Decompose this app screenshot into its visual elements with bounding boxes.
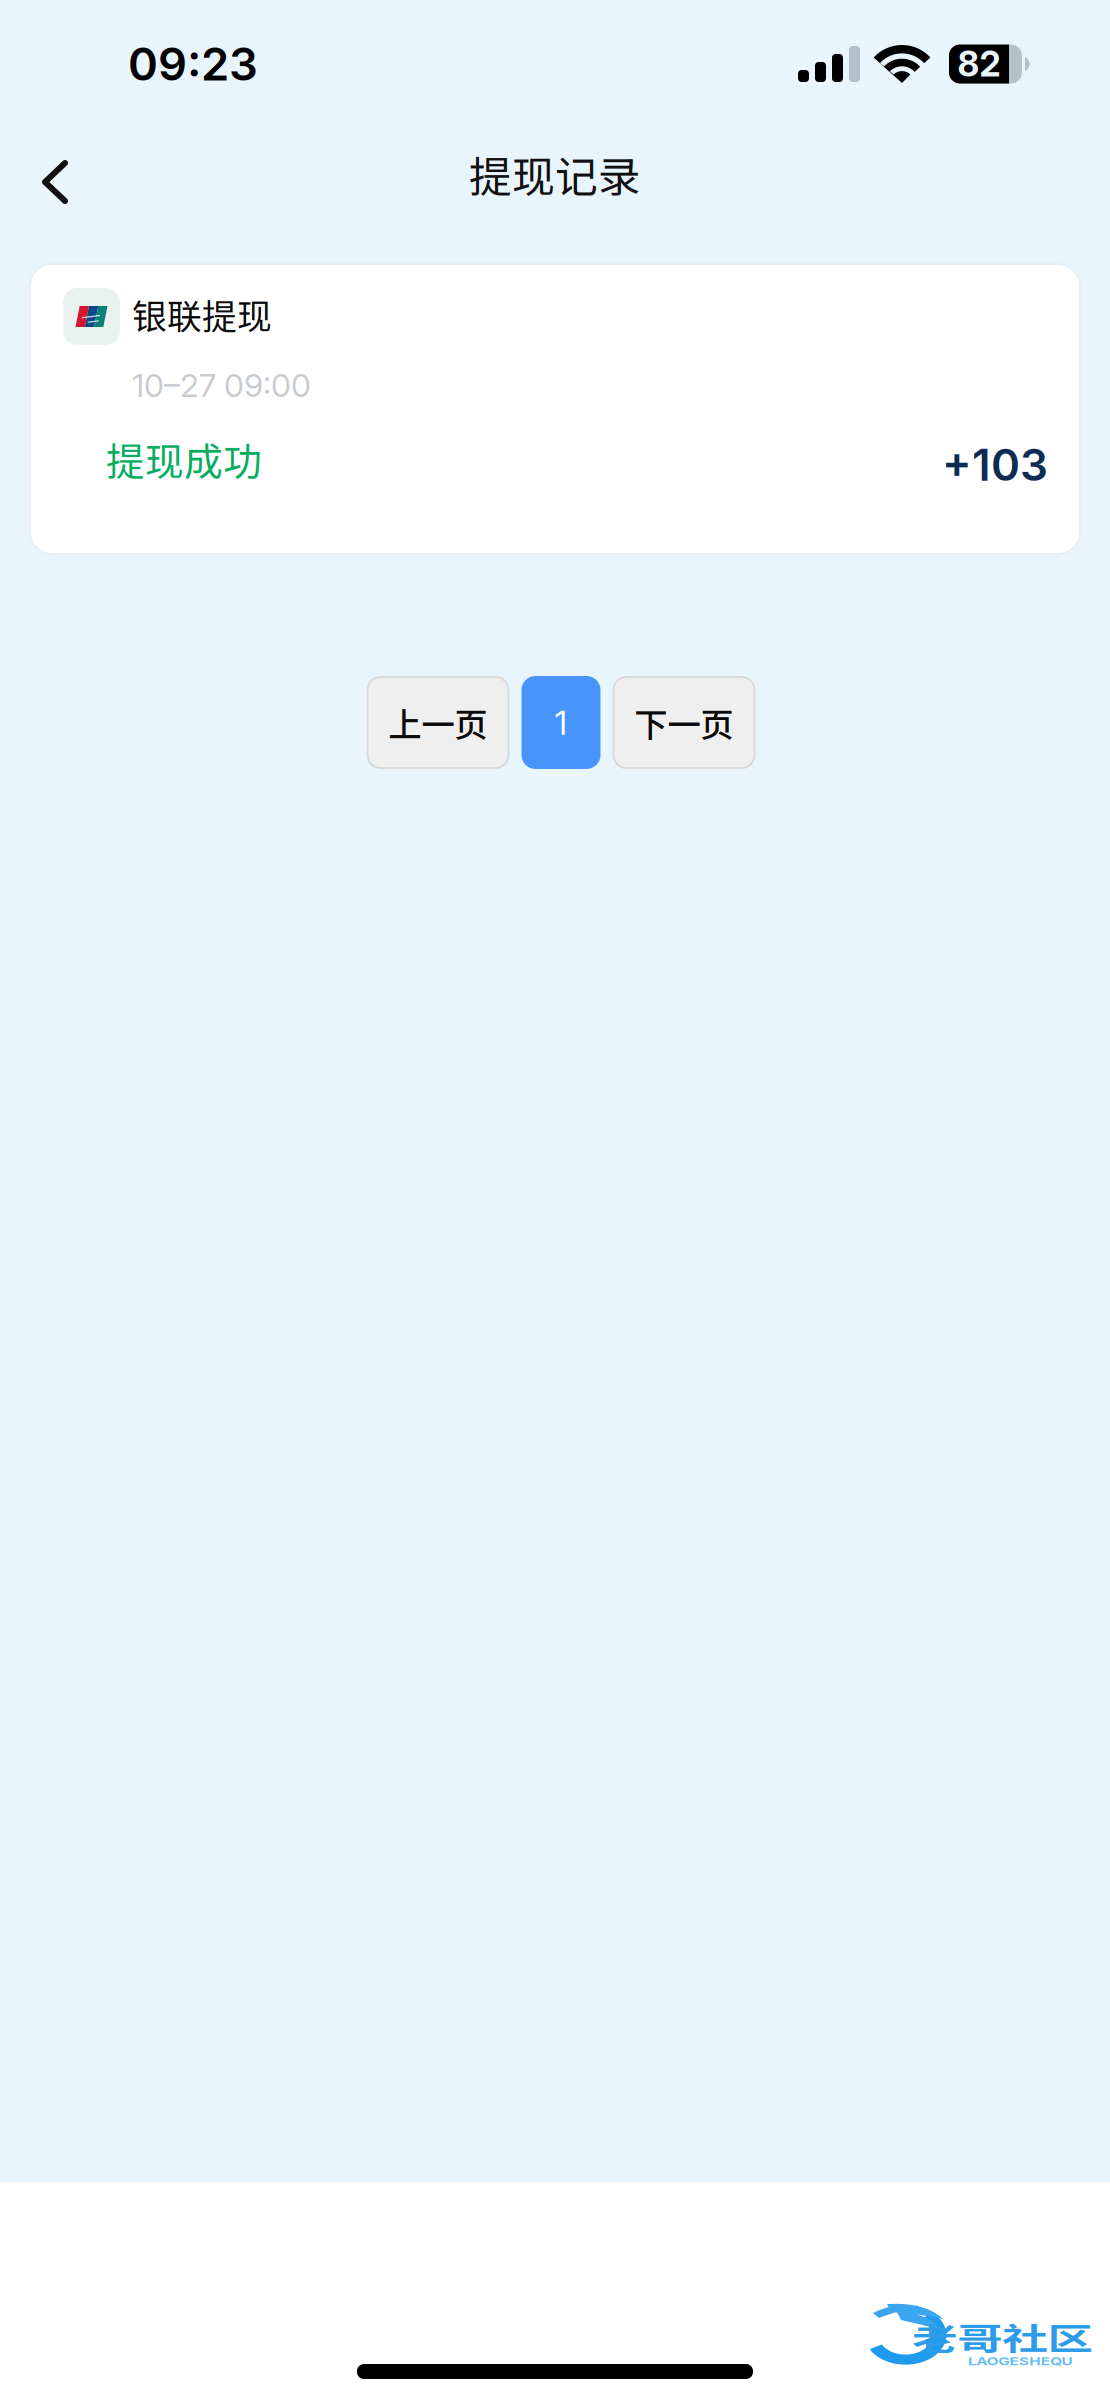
- button[interactable]: 1: [522, 677, 599, 768]
- staticText: 老哥社区: [912, 2314, 1060, 2368]
- staticText: 提现记录: [469, 143, 641, 205]
- staticText: +103: [942, 438, 1048, 491]
- staticText: LAOGESHEQU: [968, 2355, 1069, 2373]
- staticText: 82: [957, 43, 1000, 85]
- button[interactable]: Back: [0, 130, 103, 234]
- button[interactable]: 下一页: [613, 677, 754, 768]
- staticText: 09:23: [128, 37, 258, 91]
- staticText: 1: [554, 702, 567, 743]
- staticText: 10–27 09:00: [132, 366, 311, 405]
- button[interactable]: 上一页: [367, 677, 508, 768]
- staticText: 银联提现: [132, 289, 272, 339]
- staticText: 提现成功: [106, 431, 262, 487]
- staticText: 下一页: [634, 698, 733, 747]
- staticText: 上一页: [388, 698, 487, 747]
